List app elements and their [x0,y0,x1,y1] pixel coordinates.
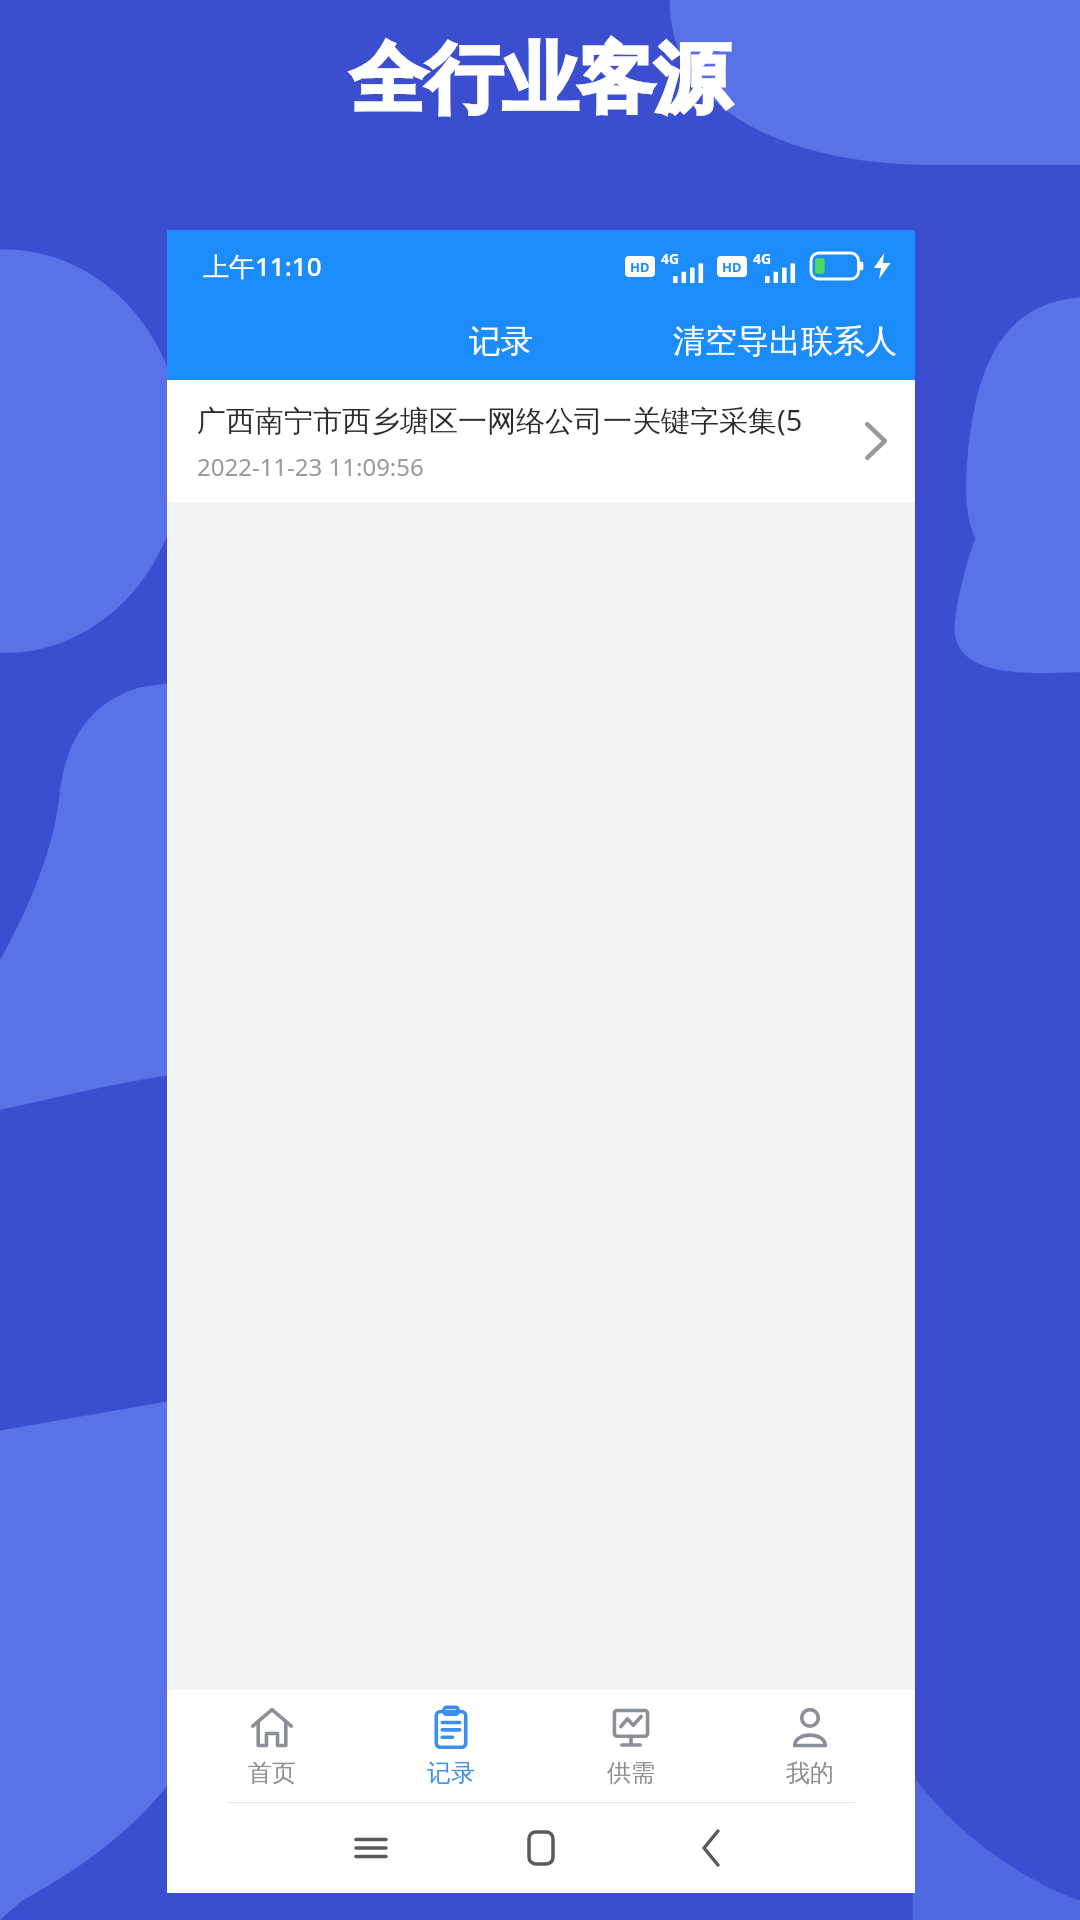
staticText: 记录 [427,1758,475,1788]
staticText: HD [722,258,742,276]
button[interactable]: 记录 [457,315,545,367]
button[interactable]: Home [456,1803,626,1893]
staticText: 广西南宁市西乡塘区一网络公司一关键字采集(5条） [197,400,825,440]
button[interactable]: Back [626,1803,796,1893]
staticText: 清空导出联系人 [673,321,897,361]
staticText: 2022-11-23 11:09:56 [197,450,424,483]
button[interactable]: 供需 [556,1699,706,1794]
button[interactable]: 清空导出联系人 [661,315,915,367]
button[interactable]: Recents [286,1803,456,1893]
button[interactable]: 记录 [376,1699,526,1794]
button[interactable]: 广西南宁市西乡塘区一网络公司一关键字采集(5条） [167,380,915,502]
staticText: 首页 [248,1758,296,1788]
staticText: 供需 [607,1758,655,1788]
staticText: 全行业客源 [0,32,1080,128]
staticText: HD [630,258,650,276]
staticText: 记录 [469,321,533,361]
staticText: 4G [661,249,680,268]
staticText: 我的 [786,1758,834,1788]
button[interactable]: 首页 [197,1699,347,1794]
button[interactable]: 我的 [735,1699,885,1794]
staticText: 4G [753,249,772,268]
staticText: 上午11:10 [203,248,322,284]
